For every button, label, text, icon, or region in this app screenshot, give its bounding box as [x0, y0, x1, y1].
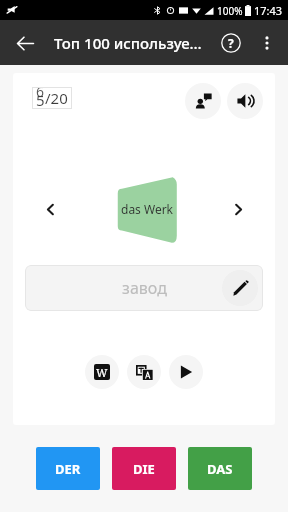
- staticText: W: [96, 365, 108, 380]
- staticText: DAS: [207, 460, 233, 478]
- staticText: das Werk: [121, 201, 174, 217]
- button[interactable]: DER: [36, 447, 100, 490]
- button[interactable]: Back: [6, 24, 44, 62]
- button[interactable]: Play: [169, 355, 203, 389]
- button[interactable]: More options: [250, 26, 284, 60]
- button[interactable]: Listen: [227, 83, 263, 119]
- staticText: завод: [122, 277, 167, 299]
- button[interactable]: Wikipedia: [85, 355, 119, 389]
- button[interactable]: das Werk: [103, 173, 185, 245]
- staticText: Топ 100 используе…: [54, 33, 202, 53]
- staticText: /20: [45, 88, 68, 108]
- button[interactable]: DAS: [188, 447, 252, 490]
- button[interactable]: Next: [221, 192, 255, 226]
- button[interactable]: Previous: [33, 192, 67, 226]
- button[interactable]: Help: [212, 24, 250, 62]
- button[interactable]: Edit: [222, 270, 258, 306]
- button[interactable]: Translate: [127, 355, 161, 389]
- staticText: 5: [36, 90, 45, 110]
- button[interactable]: Speak: [185, 83, 221, 119]
- button[interactable]: завод: [25, 265, 263, 311]
- staticText: 17:43: [254, 3, 283, 18]
- button[interactable]: DIE: [112, 447, 176, 490]
- staticText: 100%: [217, 4, 243, 18]
- staticText: 6: [36, 82, 45, 101]
- staticText: ?: [228, 35, 234, 51]
- staticText: DER: [55, 460, 81, 478]
- staticText: DIE: [133, 460, 155, 478]
